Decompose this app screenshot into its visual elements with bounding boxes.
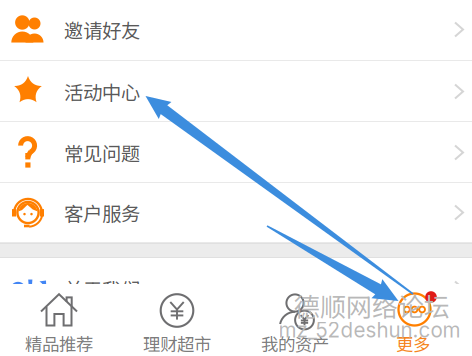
staticText: 精品推荐 <box>25 331 93 356</box>
button[interactable]: 精品推荐 <box>0 284 118 355</box>
staticText: 理财超市 <box>143 331 211 356</box>
staticText: mz_52deshun.com <box>278 317 460 342</box>
button[interactable]: 邀请好友 <box>0 0 472 61</box>
staticText: 客户服务 <box>64 198 140 226</box>
staticText: 常见问题 <box>64 138 140 166</box>
button[interactable]: 常见问题 <box>0 122 472 183</box>
staticText: 关于我们 <box>64 274 140 302</box>
button[interactable]: 更多 <box>354 284 472 355</box>
button[interactable]: 关于我们 <box>0 258 472 319</box>
staticText: 更多 <box>396 331 430 356</box>
button[interactable]: 我的资产 <box>236 284 354 355</box>
button[interactable]: 理财超市 <box>118 284 236 355</box>
staticText: 邀请好友 <box>64 15 140 43</box>
staticText: 我的资产 <box>261 331 329 356</box>
staticText: 活动中心 <box>64 77 140 105</box>
staticText: 德顺网络论坛 <box>294 287 450 324</box>
button[interactable]: 活动中心 <box>0 61 472 122</box>
button[interactable]: 客户服务 <box>0 183 472 243</box>
